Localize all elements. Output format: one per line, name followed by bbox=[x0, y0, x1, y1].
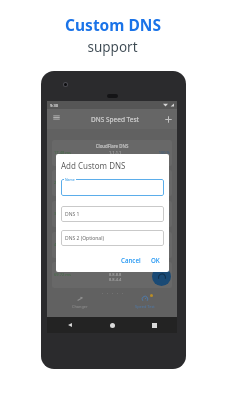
staticText: 8.8.8.8 bbox=[109, 272, 122, 277]
staticText: Quad9 DNS bbox=[52, 173, 172, 179]
button[interactable]: Changer bbox=[47, 291, 112, 313]
staticText: Changer bbox=[72, 304, 88, 309]
button[interactable]: AdGuard DNS bbox=[52, 232, 172, 258]
staticText: support bbox=[87, 38, 138, 56]
staticText: Google DNS bbox=[52, 265, 172, 271]
staticText: 100 % bbox=[154, 180, 170, 185]
staticText: 8.8.4.4 bbox=[109, 277, 122, 282]
staticText: Cancel bbox=[121, 256, 141, 264]
staticText: Add Custom DNS bbox=[61, 160, 126, 171]
staticText: OK bbox=[151, 256, 160, 264]
staticText: DNS 2 (Optional) bbox=[65, 235, 104, 242]
staticText: 9:30 bbox=[50, 103, 58, 108]
staticText: DNS Speed Test bbox=[90, 115, 140, 124]
staticText: Name bbox=[65, 177, 75, 182]
staticText: DNS 1 bbox=[65, 211, 80, 218]
staticText: 69.72 ms bbox=[54, 272, 76, 277]
staticText: 34.02 ms bbox=[54, 211, 76, 216]
button[interactable]: OpenDNS bbox=[52, 201, 172, 227]
button[interactable]: Home bbox=[110, 323, 115, 328]
staticText: 100 % bbox=[154, 272, 170, 277]
staticText: 100 % bbox=[154, 242, 170, 247]
button[interactable]: CloudFlare DNS bbox=[52, 140, 172, 166]
staticText: 48.95 ms bbox=[54, 242, 76, 247]
button[interactable]: DNS 2 (Optional) bbox=[61, 230, 164, 246]
staticText: Custom DNS bbox=[65, 14, 161, 35]
button[interactable]: Speed Test bbox=[112, 291, 177, 313]
staticText: 94.140.14.14 bbox=[103, 242, 127, 247]
button[interactable] bbox=[61, 179, 164, 196]
staticText: OpenDNS bbox=[52, 204, 172, 210]
staticText: 100 % bbox=[154, 211, 170, 216]
staticText: 17.48 ms bbox=[54, 150, 76, 155]
button[interactable]: Add custom DNS bbox=[164, 115, 173, 124]
staticText: 100 % bbox=[154, 150, 170, 155]
staticText: CloudFlare DNS bbox=[52, 143, 172, 149]
button[interactable]: Back bbox=[67, 322, 73, 328]
button[interactable]: Start speed test bbox=[152, 267, 171, 286]
button[interactable]: Google DNS bbox=[52, 262, 172, 288]
staticText: 1.1.1.1 bbox=[109, 150, 122, 155]
button[interactable]: Open navigation menu bbox=[52, 113, 61, 122]
staticText: 21.13 ms bbox=[54, 180, 76, 185]
staticText: AdGuard DNS bbox=[52, 235, 172, 241]
button[interactable]: DNS 1 bbox=[61, 206, 164, 222]
button[interactable]: Cancel bbox=[119, 254, 143, 266]
button[interactable]: OK bbox=[149, 254, 162, 266]
button[interactable]: Quad9 DNS bbox=[52, 170, 172, 196]
staticText: Speed Test bbox=[135, 304, 155, 309]
